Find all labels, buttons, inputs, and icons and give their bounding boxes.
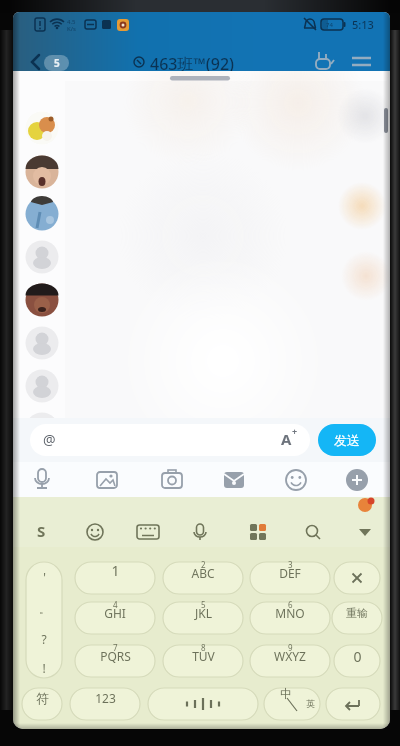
staticText: 1 bbox=[111, 561, 120, 580]
staticText: 5 bbox=[54, 56, 60, 70]
staticText: 符 bbox=[36, 690, 49, 706]
staticText: 123 bbox=[95, 690, 116, 706]
staticText: 74 bbox=[326, 21, 333, 29]
staticText: 5:13 bbox=[352, 17, 374, 32]
staticText: 发送 bbox=[334, 432, 360, 448]
staticText: 英 bbox=[306, 698, 315, 709]
staticText: A bbox=[281, 429, 292, 449]
staticText: TUV bbox=[192, 648, 215, 664]
staticText: K/s bbox=[67, 25, 76, 33]
staticText: 。 bbox=[39, 602, 50, 616]
staticText: JKL bbox=[195, 605, 212, 621]
staticText: PQRS bbox=[100, 648, 131, 664]
staticText: 5 bbox=[201, 599, 206, 610]
staticText: 2 bbox=[201, 559, 206, 570]
staticText: 463班™(92) bbox=[150, 53, 235, 75]
staticText: ! bbox=[42, 660, 46, 676]
staticText: 6 bbox=[288, 599, 293, 610]
staticText: 9 bbox=[288, 642, 293, 653]
staticText: GHI bbox=[104, 605, 126, 621]
staticText: 0 bbox=[353, 647, 362, 666]
staticText: + bbox=[292, 425, 298, 437]
staticText: 8 bbox=[201, 642, 206, 653]
staticText: @ bbox=[43, 430, 56, 449]
staticText: ' bbox=[43, 569, 46, 585]
staticText: 7 bbox=[113, 642, 118, 653]
staticText: DEF bbox=[279, 565, 301, 581]
staticText: MNO bbox=[275, 605, 305, 621]
staticText: 4 bbox=[113, 599, 118, 610]
staticText: WXYZ bbox=[274, 648, 306, 664]
staticText: ? bbox=[41, 631, 47, 647]
staticText: ABC bbox=[191, 565, 215, 581]
staticText: S bbox=[37, 521, 46, 541]
staticText: 3 bbox=[288, 559, 293, 570]
staticText: 重输 bbox=[346, 606, 368, 620]
staticText: 4.5 bbox=[67, 18, 76, 26]
staticText: 中 bbox=[280, 686, 292, 701]
